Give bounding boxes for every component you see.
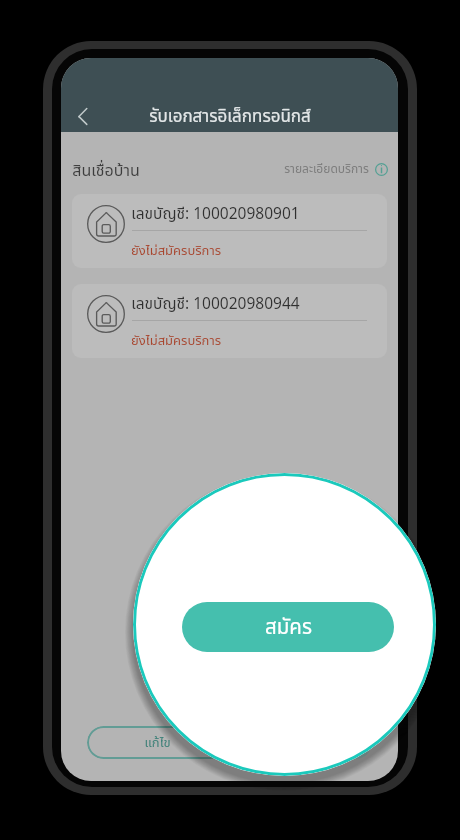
button[interactable]: แก้ไข <box>87 726 227 759</box>
staticText: ยังไม่สมัครบริการ <box>131 331 221 351</box>
staticText: แก้ไข <box>144 733 171 753</box>
staticText: เลขบัญชี: 100020980944 <box>131 293 300 316</box>
staticText: ยังไม่สมัครบริการ <box>131 241 221 261</box>
staticText: สินเชื่อบ้าน <box>72 159 140 183</box>
button[interactable]: สมัคร <box>182 602 394 652</box>
button[interactable]: เลขบัญชี: 100020980901 <box>72 194 387 268</box>
staticText: รับเอกสารอิเล็กทรอนิกส์ <box>149 104 311 130</box>
staticText: สมัคร <box>265 612 312 643</box>
staticText: รายละเอียดบริการ <box>284 160 369 178</box>
button[interactable]: เลขบัญชี: 100020980944 <box>72 284 387 358</box>
button[interactable]: Back <box>66 99 100 133</box>
button[interactable]: รายละเอียดบริการ <box>284 160 388 178</box>
staticText: เลขบัญชี: 100020980901 <box>131 203 300 226</box>
button[interactable]: สมัคร <box>235 726 372 759</box>
